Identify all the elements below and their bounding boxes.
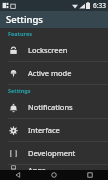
button[interactable]: Interface (0, 119, 108, 141)
staticText: Settings (8, 87, 31, 94)
button[interactable]: Apps (0, 165, 108, 170)
staticText: 6:33 (93, 1, 106, 10)
staticText: Notifications (28, 102, 73, 112)
button[interactable]: Back (0, 170, 36, 180)
button[interactable]: Lockscreen (0, 39, 108, 61)
button[interactable]: Recents (72, 170, 108, 180)
button[interactable]: Notifications (0, 96, 108, 118)
staticText: Development (28, 148, 76, 158)
staticText: Apps (28, 165, 46, 170)
staticText: Interface (28, 125, 60, 135)
staticText: Active mode (28, 68, 72, 78)
button[interactable]: Development (0, 142, 108, 164)
button[interactable]: Active mode (0, 62, 108, 84)
staticText: Settings (6, 13, 43, 26)
button[interactable]: Home (36, 170, 72, 180)
staticText: Features (8, 30, 32, 37)
staticText: Lockscreen (28, 45, 68, 55)
